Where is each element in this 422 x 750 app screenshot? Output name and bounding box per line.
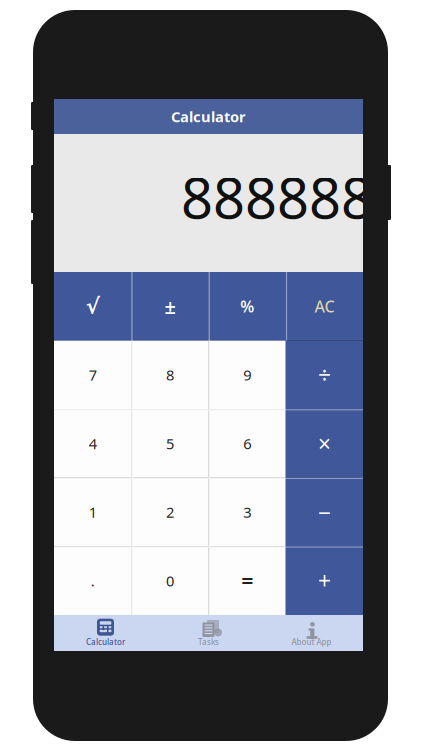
staticText: 8 [166, 365, 174, 385]
staticText: Calculator [86, 637, 125, 647]
button[interactable]: ÷ [286, 341, 363, 409]
button[interactable]: Calculator [54, 615, 157, 651]
staticText: + [318, 566, 331, 596]
button[interactable]: − [286, 478, 363, 546]
staticText: 4 [89, 434, 97, 453]
staticText: 5 [166, 434, 174, 453]
staticText: 7 [89, 365, 97, 385]
staticText: √ [86, 294, 100, 318]
button[interactable]: 1 [54, 478, 131, 546]
staticText: 9 [243, 365, 251, 385]
button[interactable]: 6 [208, 409, 286, 478]
button[interactable]: 7 [54, 341, 131, 409]
button[interactable]: 3 [208, 478, 286, 546]
staticText: = [241, 566, 253, 595]
staticText: 3 [243, 502, 251, 522]
button[interactable]: + [286, 546, 363, 615]
button[interactable]: 5 [131, 409, 208, 478]
staticText: ± [164, 293, 175, 320]
button[interactable]: . [54, 546, 131, 615]
button[interactable]: ± [131, 272, 208, 341]
staticText: Tasks [198, 637, 219, 647]
button[interactable]: √ [54, 272, 131, 341]
staticText: 6 [243, 434, 251, 453]
staticText: Calculator [171, 107, 246, 126]
button[interactable]: 2 [131, 478, 208, 546]
staticText: ÷ [318, 360, 331, 390]
staticText: % [240, 296, 254, 317]
button[interactable]: = [208, 546, 286, 615]
staticText: About App [291, 637, 331, 647]
staticText: 888888 [181, 160, 373, 234]
button[interactable]: Tasks [157, 615, 260, 651]
button[interactable]: About App [260, 615, 363, 651]
button[interactable]: × [286, 409, 363, 478]
button[interactable]: 9 [208, 341, 286, 409]
staticText: AC [314, 296, 334, 317]
button[interactable]: 0 [131, 546, 208, 615]
button[interactable]: 8 [131, 341, 208, 409]
staticText: × [318, 428, 331, 458]
staticText: 2 [166, 502, 174, 522]
button[interactable]: AC [286, 272, 363, 341]
staticText: . [91, 571, 95, 590]
staticText: 0 [166, 571, 174, 590]
button[interactable]: % [208, 272, 286, 341]
staticText: 1 [89, 502, 97, 522]
staticText: − [318, 497, 331, 527]
button[interactable]: 4 [54, 409, 131, 478]
